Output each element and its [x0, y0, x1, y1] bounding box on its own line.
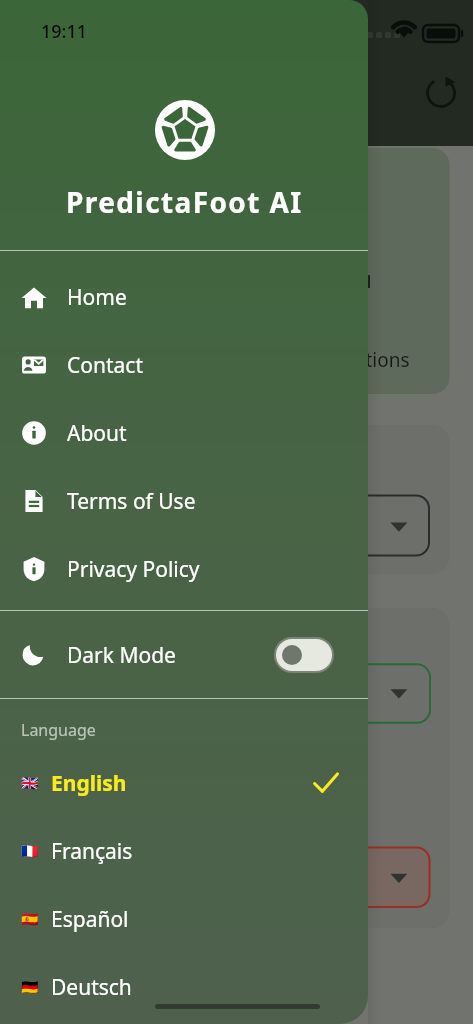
staticText: Home: [67, 283, 127, 312]
button[interactable]: 🇬🇧: [0, 749, 368, 817]
button[interactable]: About: [0, 399, 368, 467]
button[interactable]: Home: [0, 263, 368, 331]
button[interactable]: 🇫🇷: [0, 817, 368, 885]
button[interactable]: Contact: [0, 331, 368, 399]
staticText: 🇩🇪: [21, 979, 39, 995]
button[interactable]: Terms of Use: [0, 467, 368, 535]
staticText: Privacy Policy: [67, 555, 200, 584]
staticText: English: [51, 769, 127, 798]
staticText: Español: [51, 905, 129, 934]
staticText: Dark Mode: [67, 641, 176, 670]
staticText: Terms of Use: [67, 487, 196, 516]
staticText: Language: [21, 719, 96, 741]
button[interactable]: 🇪🇸: [0, 885, 368, 953]
button[interactable]: Toggle dark mode: [274, 637, 334, 673]
staticText: About: [67, 419, 127, 448]
staticText: 🇫🇷: [21, 843, 39, 859]
staticText: 🇬🇧: [21, 775, 39, 791]
staticText: Predictions: [310, 347, 410, 373]
staticText: PredictaFoot AI: [66, 183, 303, 221]
button[interactable]: 🇩🇪: [0, 953, 368, 1021]
staticText: 🇪🇸: [21, 911, 39, 927]
button[interactable]: Privacy Policy: [0, 535, 368, 603]
button[interactable]: Dark Mode: [0, 615, 368, 695]
staticText: Français: [51, 837, 133, 866]
staticText: 19:11: [41, 19, 88, 44]
staticText: Deutsch: [51, 973, 132, 1002]
staticText: Contact: [67, 351, 143, 380]
